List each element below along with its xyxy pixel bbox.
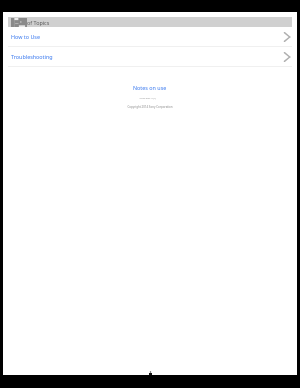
- staticText: of Topics: [27, 19, 50, 26]
- staticText: Troubleshooting: [11, 53, 53, 60]
- staticText: Copyright 2014 Sony Corporation: [127, 105, 173, 109]
- button[interactable]: Troubleshooting: [3, 46, 297, 66]
- button[interactable]: How to Use: [3, 26, 297, 46]
- staticText: 4-534-986-11(1): [139, 97, 156, 100]
- staticText: How to Use: [11, 33, 40, 40]
- button[interactable]: Notes on use: [133, 84, 167, 91]
- staticText: Notes on use: [133, 84, 167, 91]
- other: List: [11, 18, 27, 27]
